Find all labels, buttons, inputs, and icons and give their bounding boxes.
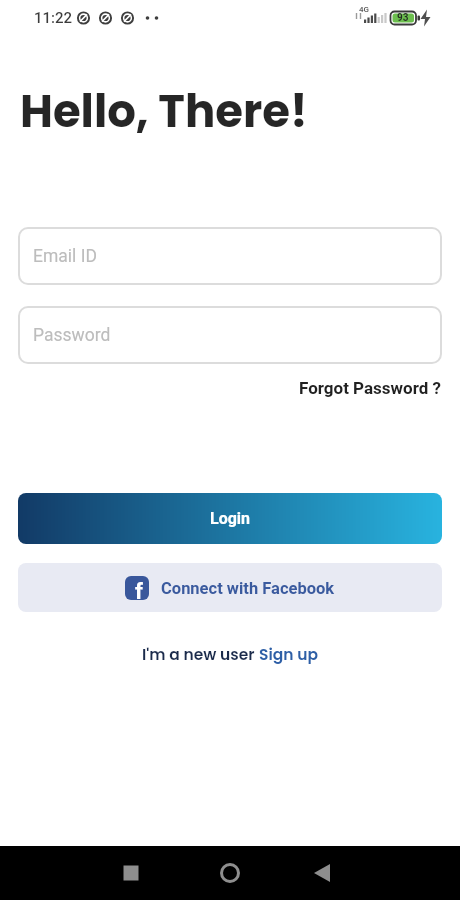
staticText: Email ID [33, 246, 97, 267]
staticText: 11:22 [34, 9, 73, 27]
staticText: I'm a new user [142, 644, 259, 666]
button[interactable]: Login [18, 493, 442, 544]
staticText: Connect with Facebook [161, 579, 335, 598]
button[interactable]: Email ID [18, 227, 442, 285]
button[interactable]: Password [18, 306, 442, 364]
staticText: Hello, There! [20, 80, 308, 143]
staticText: Password [33, 325, 111, 346]
button[interactable]: f [18, 563, 442, 612]
staticText: f [135, 579, 143, 600]
staticText: 93 [397, 12, 409, 24]
staticText: 4G [359, 5, 369, 14]
button[interactable] [154, 846, 307, 900]
button[interactable] [0, 846, 154, 900]
staticText: Sign up [259, 644, 318, 666]
button[interactable]: I'm a new user [142, 644, 318, 666]
button[interactable]: Forgot Password ? [299, 378, 442, 398]
staticText: Login [210, 509, 251, 528]
button[interactable] [307, 846, 460, 900]
